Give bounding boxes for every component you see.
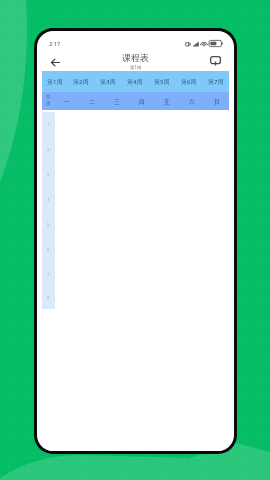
- staticText: 一: [64, 98, 70, 105]
- button[interactable]: 第7周: [202, 71, 229, 92]
- staticText: 8: [47, 295, 50, 301]
- staticText: 第6周: [181, 78, 197, 86]
- staticText: 5: [47, 222, 50, 228]
- staticText: 六: [189, 98, 195, 105]
- staticText: 次: [46, 101, 51, 107]
- staticText: 四: [139, 98, 145, 105]
- staticText: 第1周: [47, 78, 63, 86]
- staticText: 二: [89, 98, 95, 105]
- button[interactable]: Back: [48, 55, 62, 69]
- staticText: 三: [114, 98, 120, 105]
- button[interactable]: 第6周: [175, 71, 202, 92]
- staticText: 1: [47, 122, 50, 128]
- staticText: 第4周: [127, 78, 143, 86]
- staticText: 日: [214, 98, 220, 105]
- staticText: 第3周: [100, 78, 116, 86]
- staticText: 第5周: [154, 78, 170, 86]
- button[interactable]: 第5周: [148, 71, 175, 92]
- staticText: 2: [47, 147, 50, 153]
- staticText: 7: [47, 272, 50, 278]
- staticText: 3: [47, 172, 50, 178]
- staticText: 节: [46, 95, 51, 101]
- button[interactable]: 第2周: [68, 71, 94, 92]
- staticText: 第1周: [130, 64, 142, 70]
- staticText: 课程表: [122, 52, 149, 63]
- staticText: 4: [47, 197, 50, 203]
- staticText: 五: [164, 98, 170, 105]
- staticText: 第7周: [208, 78, 224, 86]
- staticText: 第2周: [73, 78, 89, 86]
- button[interactable]: 第4周: [121, 71, 148, 92]
- button[interactable]: Display: [208, 54, 222, 68]
- button[interactable]: 第1周: [42, 71, 68, 92]
- button[interactable]: 第3周: [94, 71, 121, 92]
- staticText: 6: [47, 247, 50, 253]
- staticText: 2:17: [49, 40, 61, 48]
